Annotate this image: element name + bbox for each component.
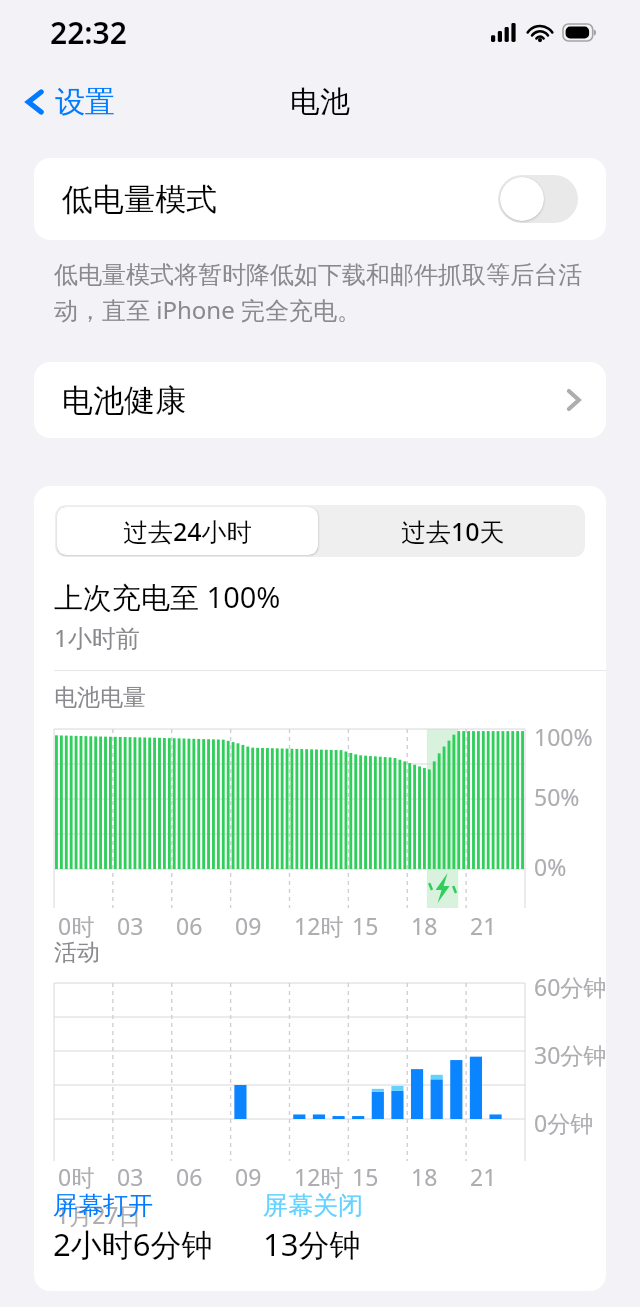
button[interactable]: 电池健康 xyxy=(34,362,606,438)
button[interactable]: 设置 xyxy=(18,77,125,127)
staticText: 21 xyxy=(470,910,497,941)
staticText: 屏幕关闭 xyxy=(263,1190,363,1221)
staticText: 1月27日 xyxy=(56,1199,142,1230)
staticText: 低电量模式 xyxy=(62,180,217,219)
staticText: 电池健康 xyxy=(62,381,186,420)
staticText: 100% xyxy=(534,721,593,752)
staticText: 活动 xyxy=(54,938,100,967)
staticText: 0时 xyxy=(58,1161,95,1192)
button[interactable]: 过去24小时 xyxy=(57,507,318,555)
staticText: 09 xyxy=(235,910,262,941)
staticText: 18 xyxy=(411,1161,438,1192)
staticText: 30分钟 xyxy=(534,1039,606,1070)
staticText: 低电量模式将暂时降低如下载和邮件抓取等后台活动，直至 iPhone 完全充电。 xyxy=(54,260,596,326)
staticText: 06 xyxy=(176,1161,203,1192)
staticText: 设置 xyxy=(55,83,115,121)
staticText: 22:32 xyxy=(50,12,127,53)
staticText: 电池 xyxy=(290,83,350,121)
button[interactable]: 过去10天 xyxy=(320,505,585,557)
staticText: 屏幕打开 xyxy=(53,1190,153,1221)
staticText: 06 xyxy=(176,910,203,941)
button[interactable]: 低电量模式 xyxy=(34,158,606,240)
staticText: 60分钟 xyxy=(534,971,606,1002)
staticText: 09 xyxy=(235,1161,262,1192)
staticText: 21 xyxy=(470,1161,497,1192)
staticText: 15 xyxy=(352,910,379,941)
staticText: 0时 xyxy=(58,910,95,941)
staticText: 0分钟 xyxy=(534,1107,594,1138)
staticText: 03 xyxy=(117,910,144,941)
staticText: 0% xyxy=(534,851,567,882)
staticText: 12时 xyxy=(294,910,344,941)
staticText: 03 xyxy=(117,1161,144,1192)
button[interactable]: 低电量模式开关 xyxy=(498,175,578,223)
staticText: 13分钟 xyxy=(263,1223,361,1265)
staticText: 18 xyxy=(411,910,438,941)
staticText: 2小时6分钟 xyxy=(53,1223,213,1265)
staticText: 15 xyxy=(352,1161,379,1192)
staticText: 12时 xyxy=(294,1161,344,1192)
staticText: 上次充电至 100% xyxy=(54,577,281,617)
staticText: 50% xyxy=(534,781,580,812)
staticText: 1小时前 xyxy=(54,621,140,654)
staticText: 过去24小时 xyxy=(123,514,252,548)
staticText: 过去10天 xyxy=(401,514,505,548)
staticText: 电池电量 xyxy=(54,683,146,712)
